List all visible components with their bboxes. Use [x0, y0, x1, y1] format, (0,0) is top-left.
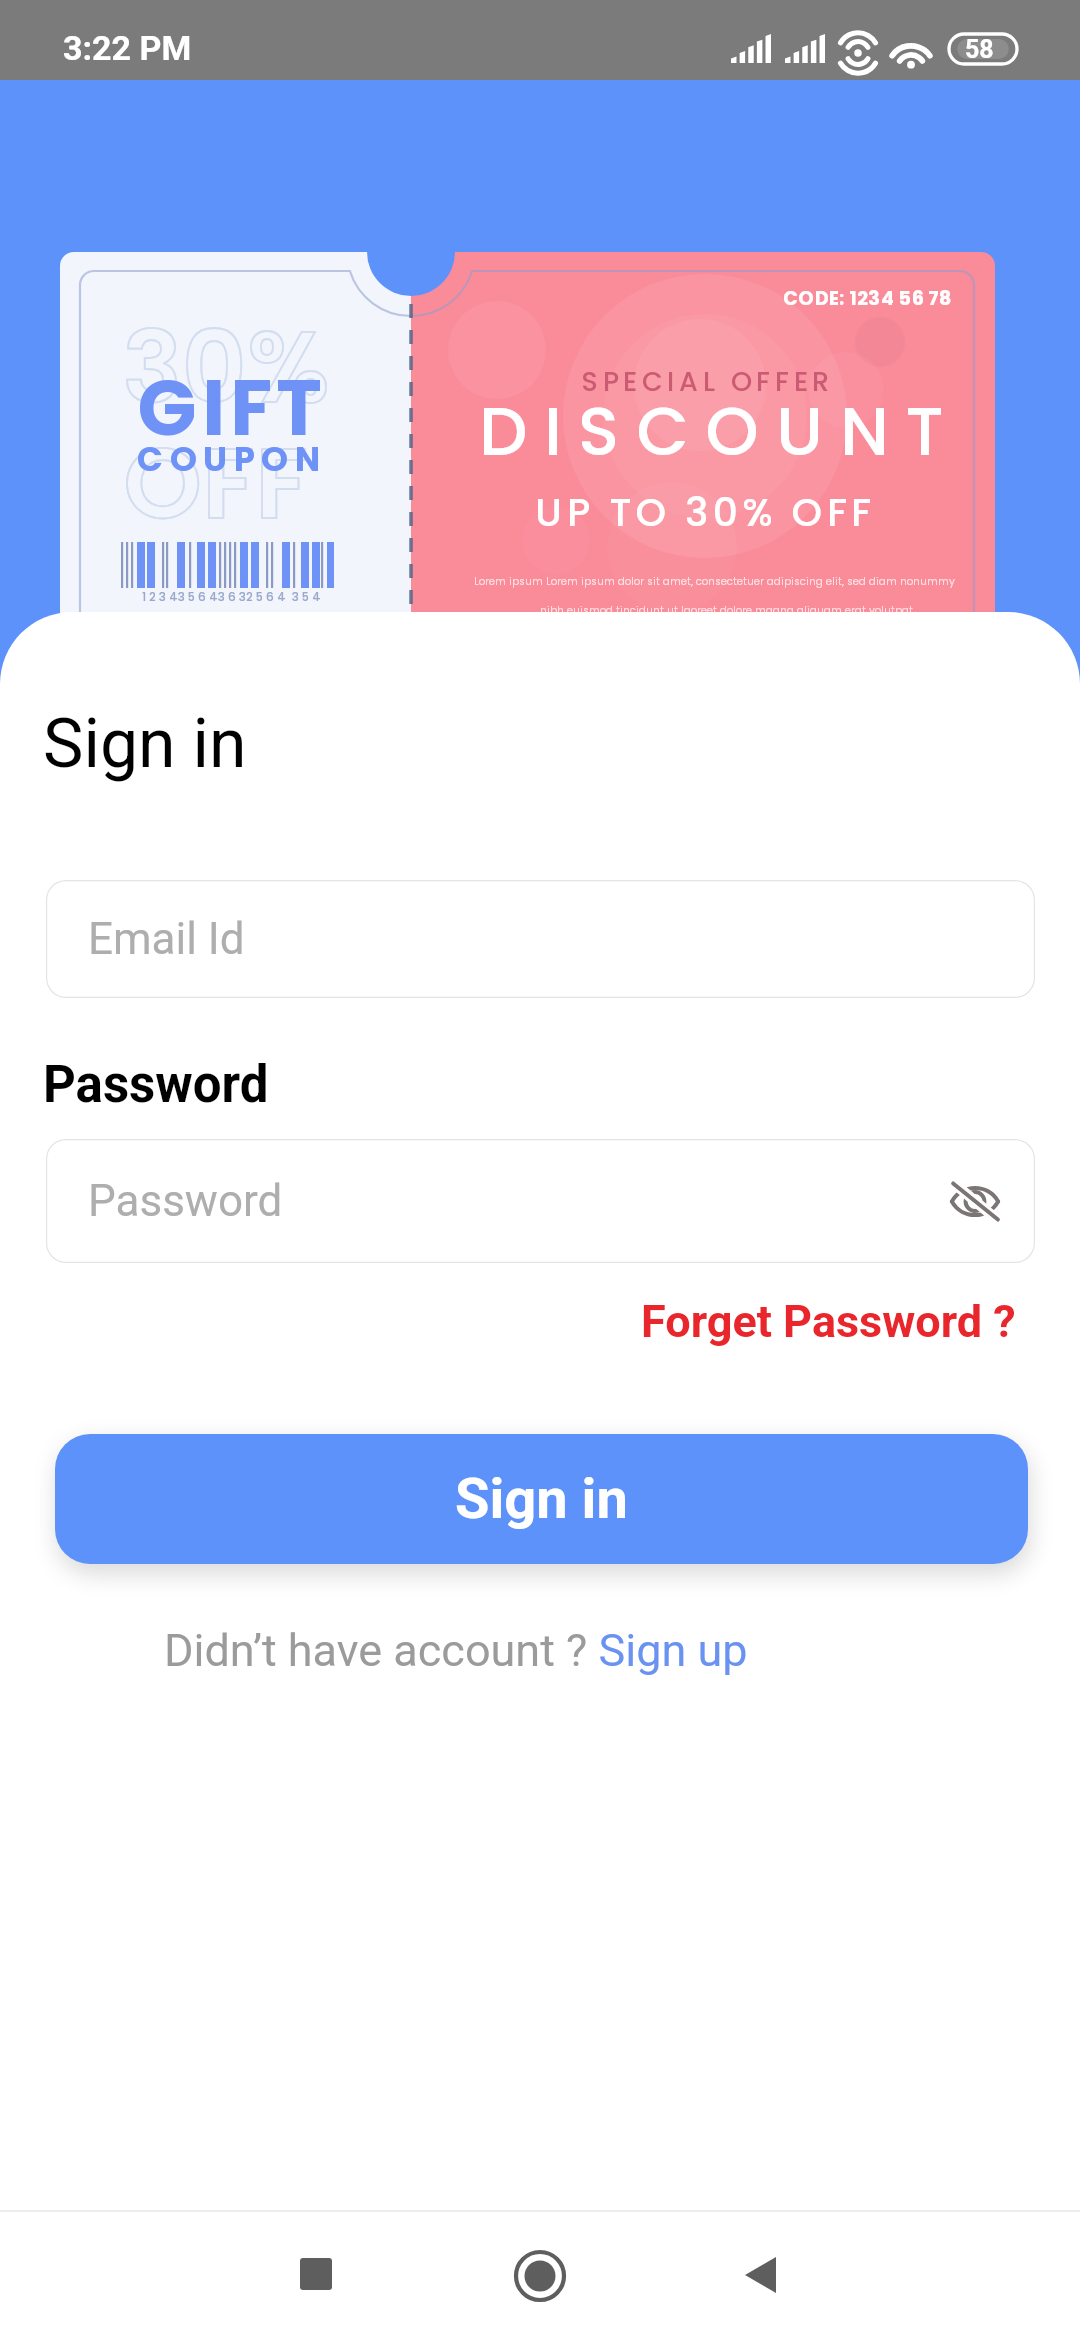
button[interactable]: Back	[700, 2215, 820, 2335]
button[interactable]: Email Id	[46, 880, 1035, 998]
staticText: Email Id	[88, 913, 245, 965]
staticText: 58	[965, 35, 994, 64]
button[interactable]: Show password	[935, 1161, 1015, 1241]
button[interactable]: Recents	[256, 2214, 376, 2334]
staticText: 3:22 PM	[63, 28, 192, 68]
button[interactable]: Didn’t have account ? Sign up	[164, 1624, 748, 1677]
button[interactable]: Password	[46, 1139, 1035, 1263]
staticText: Password	[88, 1175, 283, 1227]
staticText: Sign in	[455, 1466, 628, 1532]
staticText: Sign in	[43, 704, 247, 784]
button[interactable]: Sign in	[55, 1434, 1028, 1564]
button[interactable]: Forget Password ?	[641, 1295, 1016, 1348]
button[interactable]: Home	[480, 2216, 600, 2336]
staticText: Password	[43, 1055, 269, 1115]
